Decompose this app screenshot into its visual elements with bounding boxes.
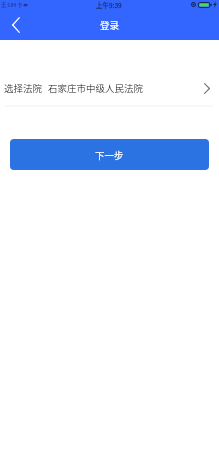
staticText: 上午9:39 <box>96 0 122 9</box>
button[interactable]: 选择法院 <box>0 70 219 105</box>
staticText: 登录 <box>100 18 120 32</box>
staticText: 选择法院 <box>4 81 43 95</box>
staticText: 石家庄市中级人民法院 <box>48 81 144 95</box>
staticText: 无 SIM 卡 <box>1 1 23 9</box>
button[interactable]: 下一步 <box>10 139 209 170</box>
staticText: 下一步 <box>95 148 124 162</box>
button[interactable]: 返回 <box>0 13 30 40</box>
